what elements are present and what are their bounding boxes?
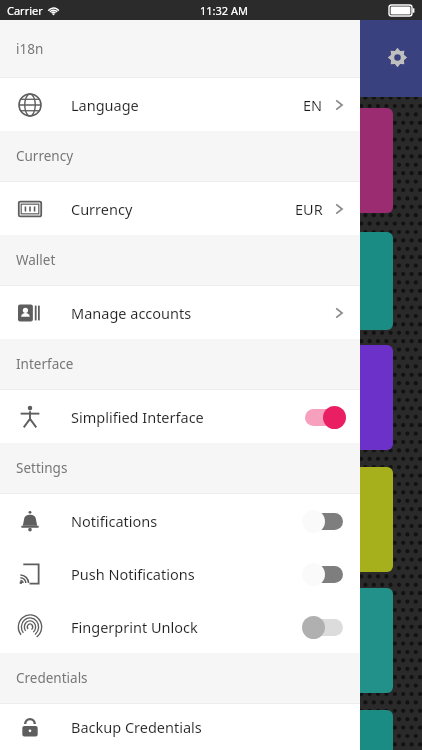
staticText: Push Notifications bbox=[71, 564, 195, 584]
button[interactable]: Manage accounts bbox=[0, 286, 360, 339]
button[interactable]: Toggle bbox=[302, 404, 346, 430]
button[interactable]: Push Notifications bbox=[0, 547, 360, 600]
staticText: i18n bbox=[16, 40, 44, 58]
button[interactable]: Currency bbox=[0, 182, 360, 235]
staticText: Simplified Interface bbox=[71, 407, 204, 427]
button[interactable]: Simplified Interface bbox=[0, 390, 360, 443]
staticText: Carrier bbox=[7, 3, 43, 18]
staticText: Currency bbox=[71, 199, 133, 219]
button[interactable]: Backup Credentials bbox=[0, 704, 360, 750]
button[interactable]: Toggle bbox=[302, 508, 346, 534]
button[interactable]: Fingerprint Unlock bbox=[0, 600, 360, 653]
staticText: 0.00 bbox=[310, 394, 336, 412]
staticText: 0.00 bbox=[310, 516, 336, 534]
button[interactable]: Language bbox=[0, 78, 360, 131]
staticText: 00 bbox=[310, 600, 340, 635]
staticText: Fingerprint Unlock bbox=[71, 617, 198, 637]
staticText: Wallet bbox=[16, 251, 56, 269]
staticText: 11:32 AM bbox=[200, 3, 248, 18]
button[interactable]: Toggle bbox=[302, 614, 346, 640]
staticText: Language bbox=[71, 95, 139, 115]
staticText: Notifications bbox=[71, 511, 158, 531]
staticText: EUR bbox=[295, 199, 323, 219]
staticText: 00 bbox=[310, 120, 340, 155]
button[interactable]: Settings bbox=[377, 37, 417, 77]
staticText: Currency bbox=[16, 147, 74, 165]
staticText: 0.00 bbox=[310, 637, 336, 655]
button[interactable]: Notifications bbox=[0, 494, 360, 547]
button[interactable]: Toggle bbox=[302, 561, 346, 587]
staticText: EN bbox=[303, 95, 323, 115]
staticText: Credentials bbox=[16, 669, 88, 687]
staticText: Backup Credentials bbox=[71, 717, 202, 737]
staticText: Interface bbox=[16, 355, 74, 373]
staticText: 00 bbox=[310, 479, 340, 514]
staticText: Settings bbox=[16, 459, 68, 477]
staticText: Manage accounts bbox=[71, 303, 192, 323]
staticText: 0.00 bbox=[310, 281, 336, 299]
